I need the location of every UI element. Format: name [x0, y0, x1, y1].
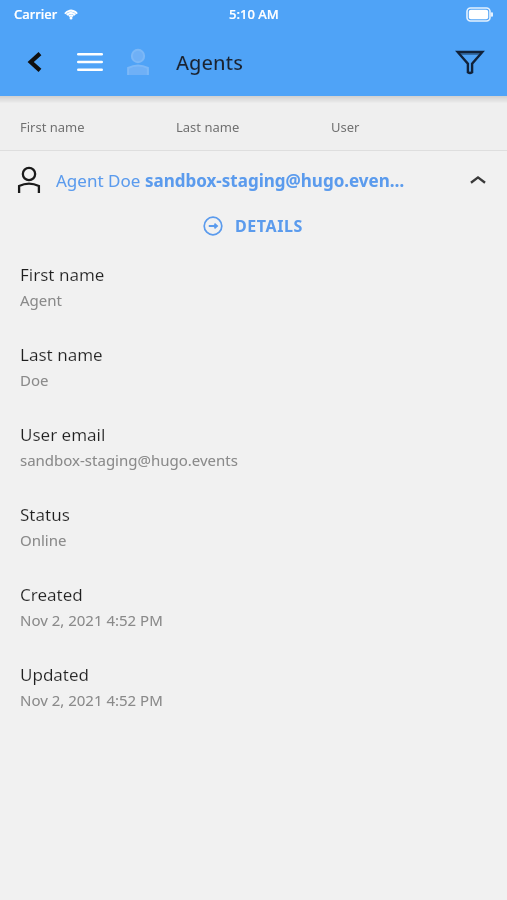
staticText: User — [331, 118, 360, 136]
other: Collapse — [463, 165, 493, 195]
staticText: Agent Doe — [56, 169, 145, 192]
staticText: Doe — [20, 370, 49, 390]
staticText: Status — [20, 503, 70, 526]
staticText: Online — [20, 530, 67, 550]
staticText: Agents — [176, 49, 243, 76]
staticText: Carrier — [14, 5, 58, 23]
staticText: Agent — [20, 290, 62, 310]
staticText: sandbox-staging@hugo.events — [20, 450, 238, 470]
button[interactable]: Filter — [447, 39, 493, 85]
button[interactable]: Back — [14, 40, 58, 84]
button[interactable]: Agent Doe — [0, 151, 507, 209]
button[interactable]: DETAILS — [193, 209, 314, 243]
staticText: Nov 2, 2021 4:52 PM — [20, 690, 163, 710]
staticText: Last name — [176, 118, 240, 136]
staticText: Updated — [20, 663, 90, 686]
staticText: Last name — [20, 343, 103, 366]
staticText: 5:10 AM — [229, 5, 279, 23]
staticText: Created — [20, 583, 83, 606]
staticText: First name — [20, 263, 105, 286]
button[interactable]: Menu — [68, 40, 112, 84]
staticText: Nov 2, 2021 4:52 PM — [20, 610, 163, 630]
staticText: User email — [20, 423, 106, 446]
staticText: First name — [20, 118, 85, 136]
staticText: sandbox-staging@hugo.even… — [145, 169, 405, 192]
button[interactable]: Account — [116, 40, 160, 84]
staticText: DETAILS — [235, 215, 304, 237]
